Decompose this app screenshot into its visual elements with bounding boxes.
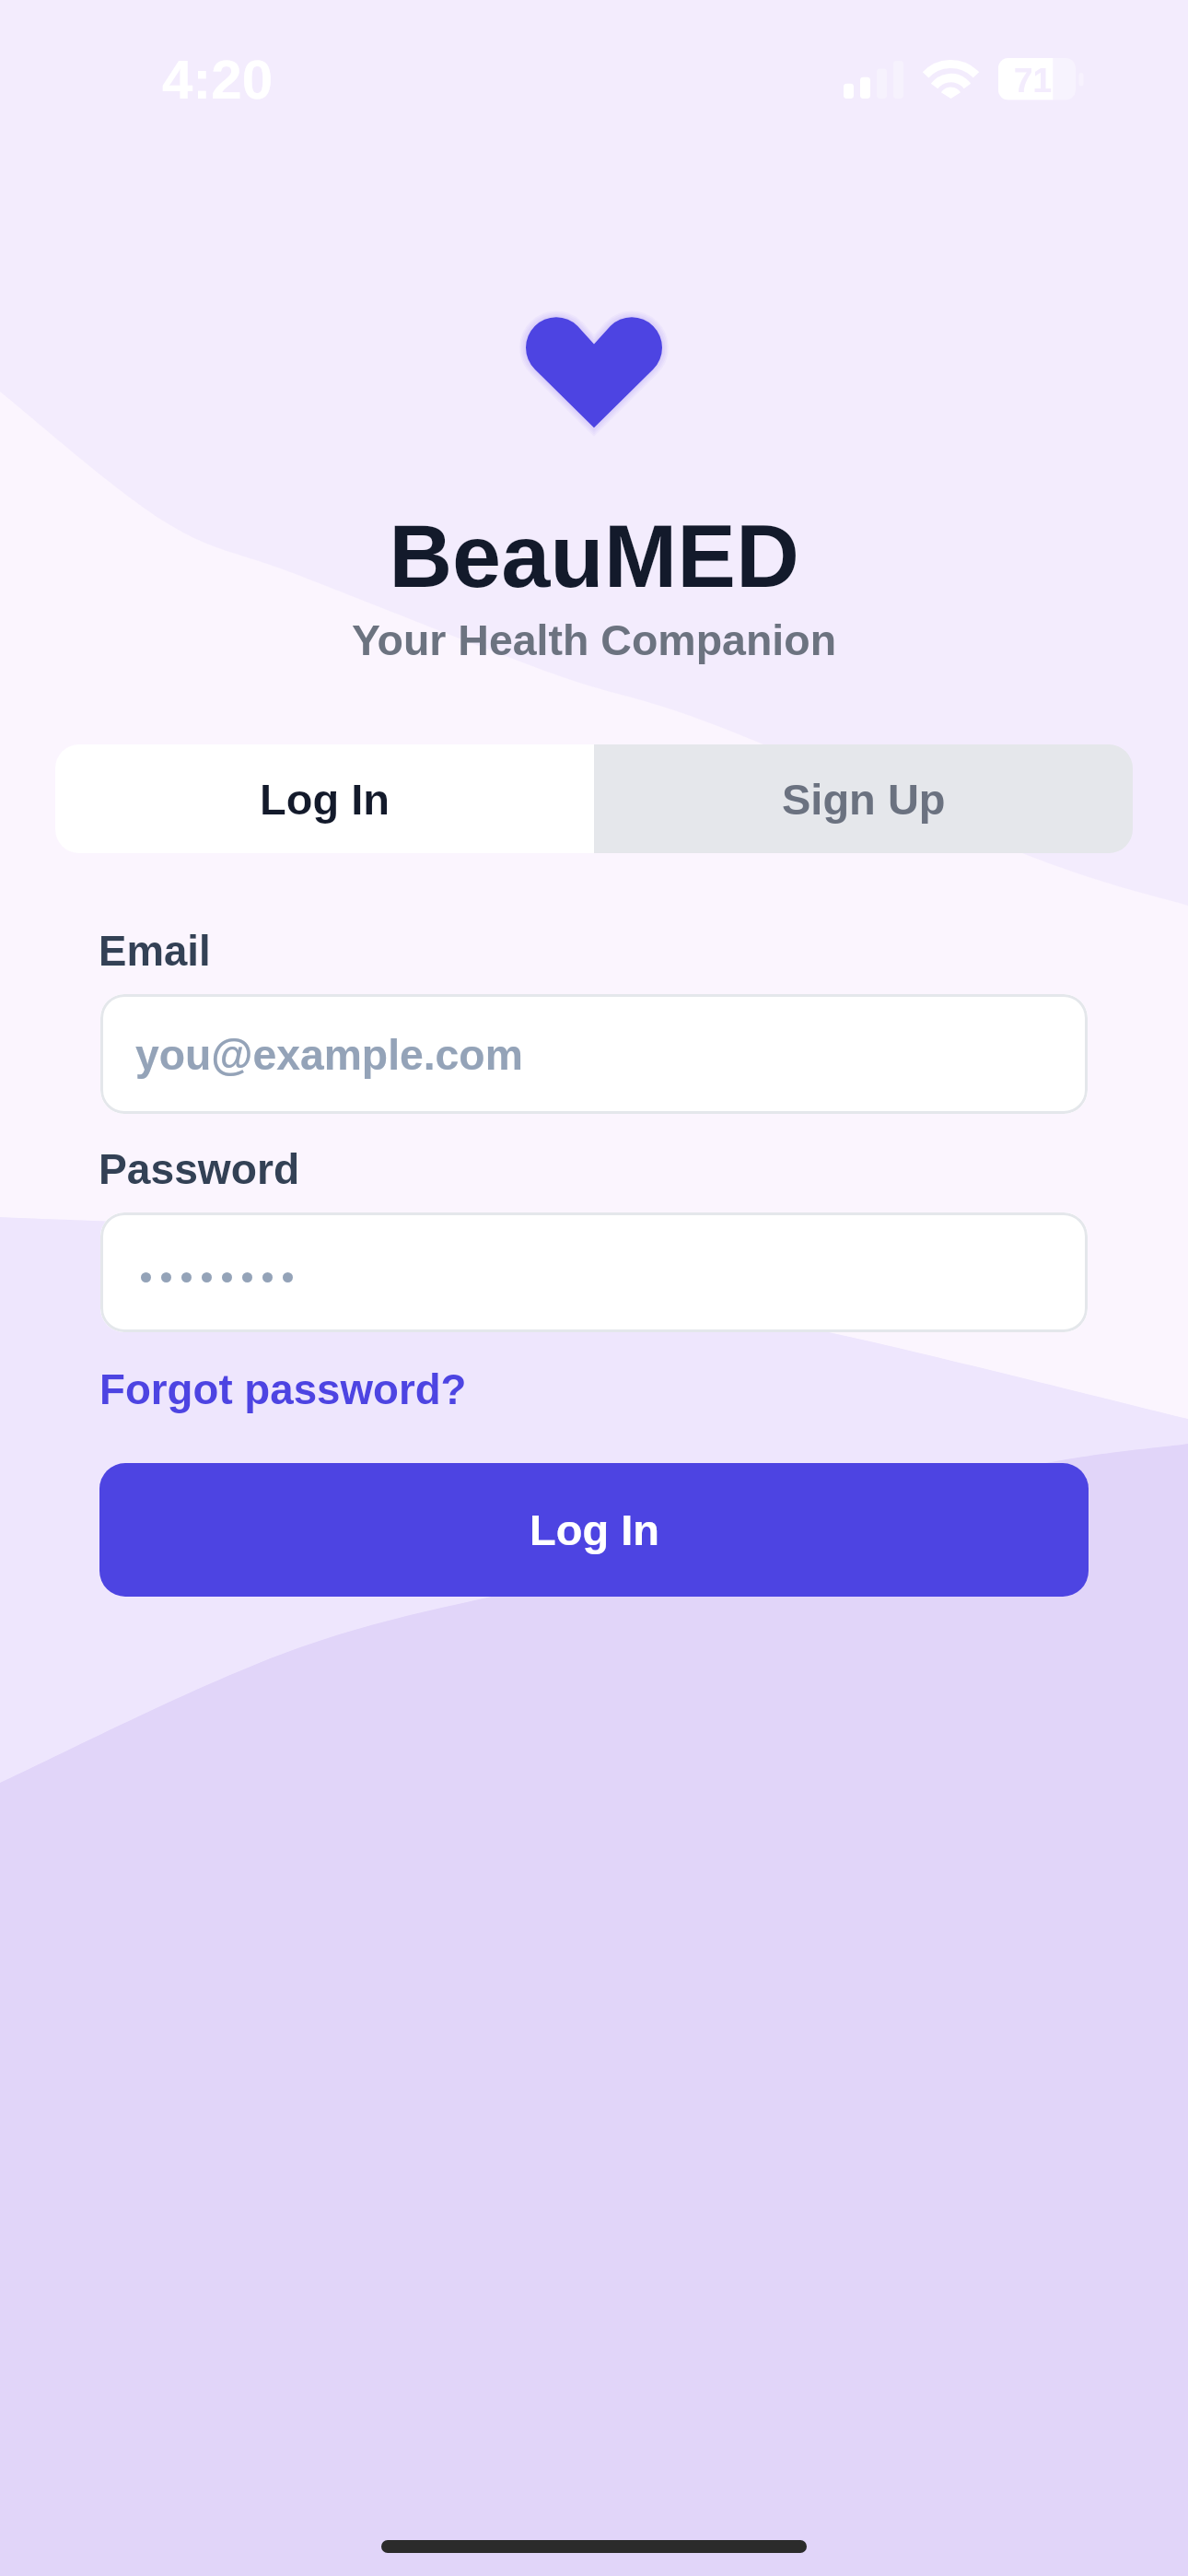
other: BeauMED heart logo [526,318,662,428]
button[interactable]: Sign Up [594,744,1133,853]
staticText: Email [99,928,211,975]
staticText: Your Health Companion [0,616,1188,664]
staticText: 4:20 [162,49,274,111]
staticText: Log In [530,1505,659,1554]
staticText: Log In [260,775,390,824]
staticText: you@example.com [135,1031,523,1079]
other: Wi-Fi [921,55,981,101]
staticText: Password [99,1145,300,1193]
staticText: 71 [1014,62,1053,100]
staticText: BeauMED [0,508,1188,606]
other: Battery 71 percent [998,58,1084,100]
other: Cellular signal [844,60,903,99]
staticText: Sign Up [782,775,946,824]
button[interactable]: Forgot password? [99,1366,467,1413]
staticText: Forgot password? [99,1366,467,1413]
button[interactable] [100,1212,1088,1332]
button[interactable]: Log In [55,744,594,853]
button[interactable]: you@example.com [100,994,1088,1114]
button[interactable]: Log In [99,1463,1089,1597]
